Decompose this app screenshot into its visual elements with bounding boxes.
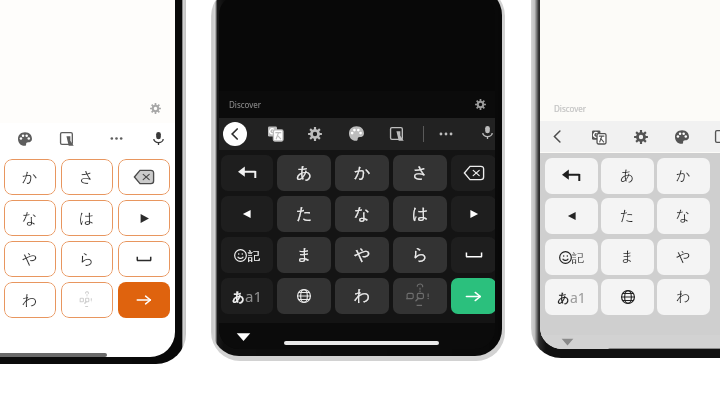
button[interactable]: Settings bbox=[146, 99, 165, 118]
button[interactable]: Translate bbox=[588, 126, 610, 148]
staticText: Discover bbox=[229, 99, 262, 110]
staticText: さ bbox=[412, 163, 429, 183]
button[interactable]: は bbox=[393, 196, 447, 232]
button[interactable]: Space bbox=[118, 241, 170, 277]
staticText: さ bbox=[79, 168, 95, 187]
button[interactable]: Punctuation bbox=[393, 278, 447, 314]
staticText: は bbox=[412, 204, 429, 224]
button[interactable]: あ bbox=[601, 158, 654, 194]
staticText: わ bbox=[676, 288, 691, 306]
staticText: な bbox=[676, 207, 691, 225]
button[interactable]: Stickers bbox=[386, 123, 408, 145]
staticText: た bbox=[620, 207, 635, 225]
staticText: わ bbox=[354, 286, 371, 306]
staticText: Discover bbox=[554, 103, 587, 114]
button[interactable]: Punctuation bbox=[61, 282, 113, 318]
button[interactable]: Themes bbox=[14, 128, 36, 150]
staticText: わ bbox=[22, 291, 38, 310]
staticText: ま bbox=[296, 245, 313, 265]
button[interactable]: な bbox=[657, 198, 710, 234]
button[interactable]: わ bbox=[4, 282, 56, 318]
staticText: や bbox=[354, 245, 371, 265]
button[interactable]: Language bbox=[601, 279, 654, 315]
button[interactable]: た bbox=[277, 196, 331, 232]
button[interactable]: ま bbox=[601, 239, 654, 275]
staticText: な bbox=[354, 204, 371, 224]
staticText: あ bbox=[620, 167, 635, 185]
button[interactable]: Language bbox=[277, 278, 331, 314]
button[interactable]: な bbox=[335, 196, 389, 232]
button[interactable]: ら bbox=[393, 237, 447, 273]
button[interactable]: や bbox=[4, 241, 56, 277]
button[interactable]: Voice input bbox=[477, 122, 495, 143]
button[interactable]: わ bbox=[657, 279, 710, 315]
button[interactable]: や bbox=[335, 237, 389, 273]
button[interactable]: Input mode bbox=[221, 278, 273, 314]
staticText: か bbox=[354, 163, 371, 183]
staticText: あ bbox=[232, 289, 245, 304]
button[interactable]: Delete bbox=[451, 155, 495, 191]
button[interactable]: な bbox=[4, 200, 56, 236]
button[interactable]: Undo bbox=[221, 155, 273, 191]
button[interactable]: Settings bbox=[304, 123, 326, 145]
staticText: な bbox=[22, 209, 38, 228]
button[interactable]: Enter bbox=[118, 282, 170, 318]
button[interactable]: Space bbox=[451, 237, 495, 273]
button[interactable]: Cursor left bbox=[545, 198, 598, 234]
button[interactable]: わ bbox=[335, 278, 389, 314]
staticText: や bbox=[22, 250, 38, 269]
button[interactable]: Enter bbox=[451, 278, 495, 314]
button[interactable]: は bbox=[61, 200, 113, 236]
button[interactable]: あ bbox=[277, 155, 331, 191]
button[interactable]: Settings bbox=[475, 99, 486, 110]
button[interactable]: さ bbox=[61, 159, 113, 195]
staticText: a1 bbox=[570, 288, 586, 307]
button[interactable]: Input mode bbox=[545, 279, 598, 315]
button[interactable]: か bbox=[657, 158, 710, 194]
button[interactable]: Themes bbox=[671, 126, 693, 148]
staticText: ら bbox=[412, 245, 429, 265]
button[interactable]: Back bbox=[548, 127, 567, 146]
button[interactable]: Translate bbox=[264, 122, 287, 145]
button[interactable]: Hide keyboard bbox=[236, 329, 251, 344]
button[interactable]: Emoji bbox=[545, 239, 598, 275]
button[interactable]: Hide keyboard bbox=[557, 331, 578, 349]
staticText: あ bbox=[296, 163, 313, 183]
button[interactable]: ま bbox=[277, 237, 331, 273]
button[interactable]: Stickers bbox=[711, 126, 720, 148]
button[interactable]: Settings bbox=[630, 126, 652, 148]
button[interactable]: Emoji bbox=[221, 237, 273, 273]
button[interactable]: さ bbox=[393, 155, 447, 191]
staticText: 記 bbox=[572, 250, 584, 265]
staticText: や bbox=[676, 248, 691, 266]
button[interactable]: More options bbox=[435, 123, 457, 145]
staticText: ま bbox=[620, 248, 635, 266]
button[interactable]: や bbox=[657, 239, 710, 275]
staticText: ら bbox=[79, 250, 95, 269]
staticText: あ bbox=[557, 290, 570, 305]
button[interactable]: か bbox=[4, 159, 56, 195]
button[interactable]: Right bbox=[118, 200, 170, 236]
staticText: か bbox=[22, 168, 38, 187]
staticText: か bbox=[676, 167, 691, 185]
button[interactable]: Themes bbox=[345, 122, 368, 145]
staticText: 記 bbox=[248, 248, 260, 263]
button[interactable]: Back bbox=[223, 122, 247, 146]
button[interactable]: Stickers bbox=[56, 128, 78, 150]
button[interactable]: Voice input bbox=[148, 128, 169, 149]
staticText: は bbox=[79, 209, 95, 228]
button[interactable]: ら bbox=[61, 241, 113, 277]
staticText: た bbox=[296, 204, 313, 224]
button[interactable]: か bbox=[335, 155, 389, 191]
button[interactable]: Cursor left bbox=[221, 196, 273, 232]
button[interactable]: Delete bbox=[118, 159, 170, 195]
button[interactable]: Undo bbox=[545, 158, 598, 194]
button[interactable]: Cursor right bbox=[451, 196, 495, 232]
button[interactable]: た bbox=[601, 198, 654, 234]
staticText: a1 bbox=[245, 286, 262, 306]
button[interactable]: More options bbox=[106, 128, 127, 149]
